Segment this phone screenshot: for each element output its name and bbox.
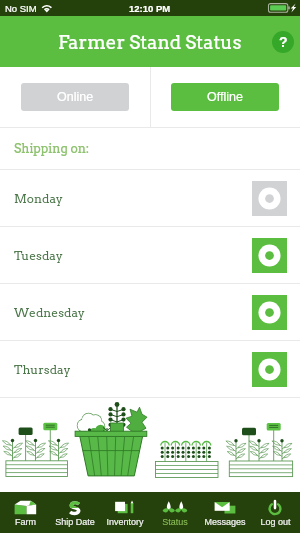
staticText: Messages bbox=[204, 517, 246, 527]
staticText: Farmer Stand Status bbox=[58, 31, 242, 53]
staticText: Shipping on: bbox=[14, 141, 90, 156]
button[interactable]: Monday bbox=[0, 170, 300, 226]
button[interactable]: Tuesday bbox=[0, 227, 300, 283]
staticText: Farm bbox=[15, 517, 36, 527]
button[interactable]: Status bbox=[150, 492, 200, 533]
other: Monday shipping off bbox=[252, 181, 287, 216]
staticText: Offline bbox=[207, 90, 243, 104]
button[interactable]: Offline bbox=[171, 83, 279, 111]
button[interactable]: Inventory bbox=[100, 492, 150, 533]
staticText: Wednesday bbox=[14, 305, 85, 319]
staticText: Online bbox=[57, 90, 94, 104]
staticText: 12:10 PM bbox=[129, 3, 171, 14]
other: Wednesday shipping on bbox=[252, 295, 287, 330]
other: Thursday shipping on bbox=[252, 352, 287, 387]
other: Tuesday shipping on bbox=[252, 238, 287, 273]
button[interactable]: Wednesday bbox=[0, 284, 300, 340]
staticText: Ship Date bbox=[55, 517, 95, 527]
staticText: No SIM bbox=[5, 3, 37, 14]
staticText: Log out bbox=[260, 517, 291, 527]
staticText: Status bbox=[162, 517, 188, 527]
button[interactable]: Online bbox=[21, 83, 129, 111]
staticText: Inventory bbox=[106, 517, 144, 527]
button[interactable]: Thursday bbox=[0, 341, 300, 397]
staticText: Thursday bbox=[14, 362, 71, 376]
button[interactable]: Farm bbox=[0, 492, 50, 533]
button[interactable]: Ship Date bbox=[50, 492, 100, 533]
staticText: Monday bbox=[14, 191, 63, 205]
button[interactable]: Messages bbox=[200, 492, 250, 533]
button[interactable]: Log out bbox=[250, 492, 300, 533]
staticText: Tuesday bbox=[14, 248, 63, 262]
staticText: ? bbox=[279, 34, 288, 50]
button[interactable]: Help bbox=[272, 31, 294, 53]
